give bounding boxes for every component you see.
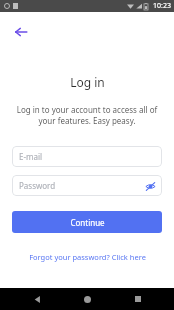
button[interactable]: Back [6, 17, 36, 47]
button[interactable]: Continue [12, 211, 162, 233]
staticText: E-mail [19, 151, 43, 162]
staticText: 10:23 [153, 1, 171, 11]
button[interactable]: Forgot your password? Click here [23, 249, 152, 265]
staticText: Forgot your password? Click here [29, 252, 146, 262]
staticText: Log in [70, 74, 105, 90]
button[interactable]: Show password [143, 179, 157, 193]
button[interactable]: Home [73, 288, 101, 310]
button[interactable]: E-mail [12, 146, 162, 167]
button[interactable]: Recent apps [124, 288, 152, 310]
button[interactable]: Back [23, 288, 51, 310]
button[interactable]: Password [12, 175, 162, 196]
staticText: Log in to your account to access all of … [10, 104, 164, 126]
staticText: Password [19, 180, 56, 191]
staticText: Continue [70, 217, 105, 228]
